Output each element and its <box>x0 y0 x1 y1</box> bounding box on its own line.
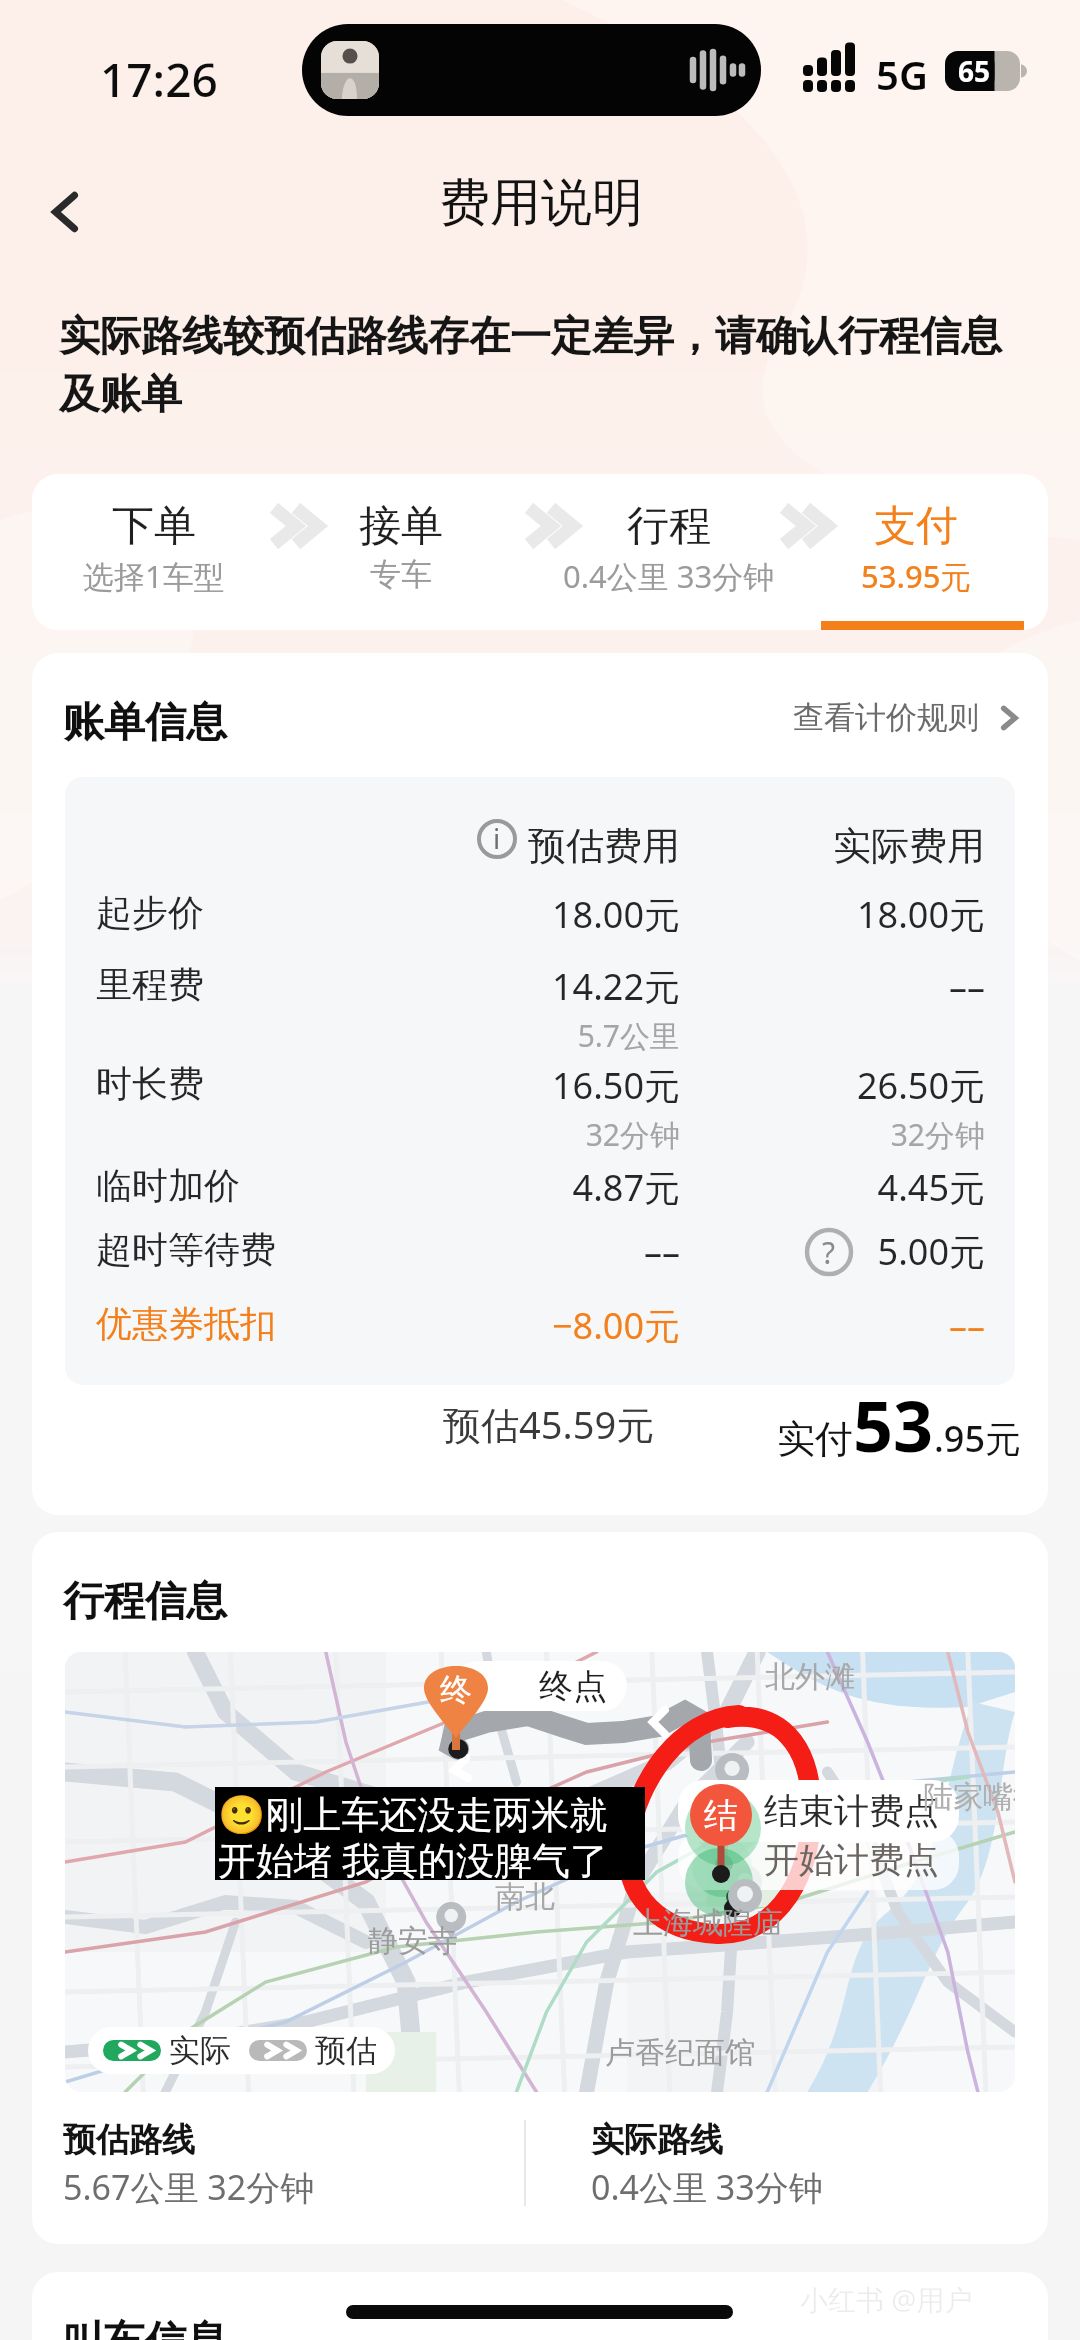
staticText: 🙂刚上车还没走两米就开始堵 我真的没脾气了 <box>218 1791 642 1884</box>
staticText: 实付 <box>777 1415 853 1463</box>
staticText: 4.45元 <box>585 1163 985 1212</box>
staticText: 5.00元 <box>585 1227 985 1276</box>
button[interactable]: 查看计价规则 <box>793 698 1019 737</box>
staticText: 16.50元 <box>280 1061 680 1110</box>
staticText: 时长费 <box>96 1061 204 1106</box>
staticText: 预估路线 <box>63 2119 195 2161</box>
staticText: 18.00元 <box>280 890 680 939</box>
staticText: 行程 <box>627 500 711 553</box>
staticText: 开始计费点 <box>764 1838 939 1882</box>
staticText: 接单 <box>359 500 443 553</box>
staticText: i <box>493 819 501 857</box>
staticText: 专车 <box>370 555 432 594</box>
staticText: 小红书 @用户 <box>800 2280 973 2318</box>
button[interactable]: Trip route map <box>65 1652 1015 2092</box>
button[interactable]: 下单 <box>32 474 1048 630</box>
staticText: 18.00元 <box>585 890 985 939</box>
staticText: 支付 <box>874 500 958 553</box>
staticText: 26.50元 <box>585 1061 985 1110</box>
staticText: 预估45.59元 <box>443 1398 655 1450</box>
staticText: 结束计费点 <box>764 1789 939 1833</box>
button[interactable]: Back <box>22 168 108 254</box>
staticText: 53.95元 <box>861 555 972 597</box>
staticText: –– <box>585 962 985 1011</box>
staticText: 上海城隍庙 <box>633 1904 783 1942</box>
button[interactable]: Overtime waiting fee help <box>805 1228 853 1276</box>
staticText: 预估 <box>315 2031 377 2070</box>
staticText: 费用说明 <box>439 171 643 235</box>
staticText: –– <box>585 1301 985 1350</box>
staticText: ? <box>822 1232 836 1273</box>
staticText: 卢香纪面馆 <box>605 2034 755 2072</box>
staticText: 陆家嘴街 <box>923 1778 1015 1816</box>
staticText: −8.00元 <box>280 1301 680 1350</box>
staticText: 静安寺 <box>368 1922 458 1960</box>
staticText: 预估费用 <box>280 822 680 870</box>
staticText: 下单 <box>112 500 196 553</box>
staticText: –– <box>280 1227 680 1276</box>
staticText: 终点 <box>539 1665 607 1708</box>
button[interactable]: 叫车信息 <box>32 2272 1048 2340</box>
staticText: 查看计价规则 <box>793 698 979 737</box>
staticText: 实际费用 <box>585 822 985 870</box>
staticText: 5G <box>876 47 928 101</box>
staticText: 65 <box>958 52 991 90</box>
staticText: 17:26 <box>100 48 218 111</box>
staticText: 终 <box>440 1670 472 1710</box>
staticText: 里程费 <box>96 962 204 1007</box>
staticText: 北外滩 <box>765 1658 855 1696</box>
staticText: 0.4公里 33分钟 <box>563 555 775 597</box>
staticText: 32分钟 <box>585 1114 985 1155</box>
staticText: 结 <box>704 1794 738 1837</box>
staticText: 叫车信息 <box>63 2316 227 2340</box>
staticText: 5.7公里 <box>280 1015 680 1056</box>
staticText: 账单信息 <box>63 697 227 749</box>
staticText: .95元 <box>934 1414 1021 1463</box>
staticText: 实际路线较预估路线存在一定差异，请确认行程信息及账单 <box>59 311 1012 420</box>
staticText: 4.87元 <box>280 1163 680 1212</box>
staticText: 南北 <box>495 1878 555 1916</box>
staticText: 行程信息 <box>63 1576 227 1628</box>
staticText: 0.4公里 33分钟 <box>591 2164 823 2210</box>
staticText: 优惠券抵扣 <box>96 1301 276 1346</box>
staticText: 选择1车型 <box>83 555 225 597</box>
staticText: 起步价 <box>96 890 204 935</box>
staticText: 实际 <box>169 2031 231 2070</box>
staticText: 超时等待费 <box>96 1227 276 1272</box>
staticText: 14.22元 <box>280 962 680 1011</box>
button[interactable]: Estimated fee info <box>477 819 517 859</box>
staticText: 实际路线 <box>591 2119 723 2161</box>
staticText: 临时加价 <box>96 1163 240 1208</box>
staticText: 53 <box>853 1377 934 1472</box>
staticText: 32分钟 <box>280 1114 680 1155</box>
staticText: 5.67公里 32分钟 <box>63 2164 315 2210</box>
